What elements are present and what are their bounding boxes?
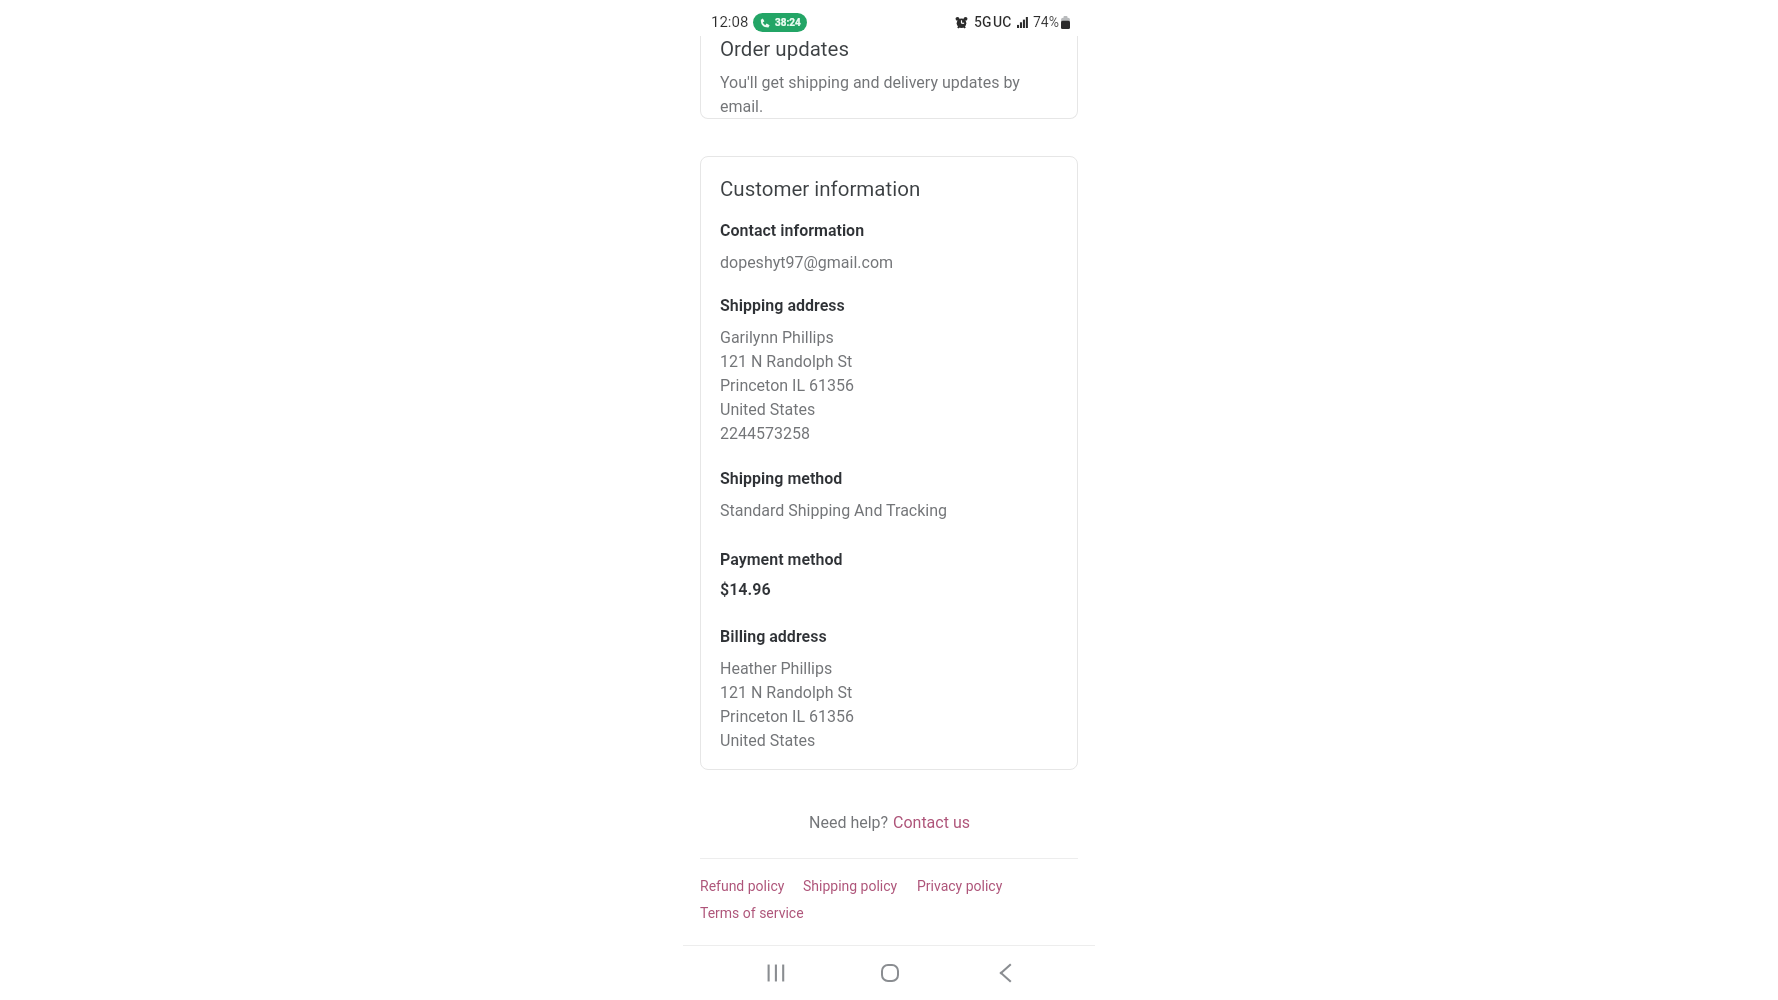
staticText: 5G bbox=[974, 14, 992, 30]
staticText: Order updates bbox=[720, 37, 850, 61]
staticText: Shipping method bbox=[720, 469, 843, 488]
button[interactable]: Shipping policy bbox=[803, 878, 898, 894]
button[interactable]: Need help? bbox=[700, 813, 1078, 832]
staticText: Garilynn Phillips 121 N Randolph St Prin… bbox=[720, 328, 855, 443]
staticText: Payment method bbox=[720, 550, 843, 569]
button[interactable]: Home bbox=[866, 949, 914, 997]
staticText: dopeshyt97@gmail.com bbox=[720, 253, 894, 272]
staticText: 38:24 bbox=[775, 17, 801, 29]
button[interactable]: Recent apps bbox=[752, 949, 800, 997]
staticText: Contact information bbox=[720, 221, 865, 240]
staticText: Need help? bbox=[809, 813, 893, 832]
button[interactable]: Ongoing call 38:24 bbox=[753, 13, 807, 32]
staticText: You'll get shipping and delivery updates… bbox=[720, 73, 1058, 116]
staticText: $14.96 bbox=[720, 580, 771, 599]
staticText: Customer information bbox=[720, 177, 921, 201]
staticText: 74% bbox=[1033, 14, 1059, 30]
staticText: Standard Shipping And Tracking bbox=[720, 501, 948, 520]
staticText: 12:08 bbox=[711, 13, 749, 31]
button[interactable]: Back bbox=[981, 949, 1029, 997]
button[interactable]: Refund policy bbox=[700, 878, 785, 894]
button[interactable]: Terms of service bbox=[700, 905, 804, 921]
staticText: UC bbox=[993, 14, 1012, 30]
staticText: Heather Phillips 121 N Randolph St Princ… bbox=[720, 659, 855, 750]
staticText: Shipping address bbox=[720, 296, 845, 315]
staticText: Billing address bbox=[720, 627, 827, 646]
button[interactable]: Privacy policy bbox=[917, 878, 1003, 894]
staticText: Contact us bbox=[893, 813, 970, 832]
